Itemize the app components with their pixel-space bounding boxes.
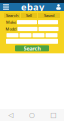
button[interactable]: Back bbox=[0, 111, 21, 119]
button[interactable]: Sell bbox=[21, 13, 37, 18]
staticText: Search bbox=[23, 45, 40, 52]
button[interactable]: Menu bbox=[0, 3, 12, 11]
staticText: ○ bbox=[29, 111, 35, 119]
staticText: Model bbox=[5, 26, 16, 32]
button[interactable]: Recents bbox=[43, 111, 64, 119]
button[interactable]: Search bbox=[4, 13, 20, 18]
staticText: ◁ bbox=[8, 111, 13, 119]
button[interactable]: Search bbox=[15, 45, 49, 51]
staticText: Saved bbox=[44, 13, 54, 18]
button[interactable]: Saved bbox=[38, 13, 60, 18]
staticText: Make bbox=[6, 19, 16, 25]
button[interactable]: Account bbox=[53, 3, 64, 10]
staticText: Sell bbox=[26, 13, 32, 18]
button[interactable]: Home bbox=[21, 111, 43, 119]
staticText: Search bbox=[6, 13, 18, 18]
staticText: □ bbox=[50, 111, 56, 119]
staticText: ebay bbox=[21, 1, 44, 13]
